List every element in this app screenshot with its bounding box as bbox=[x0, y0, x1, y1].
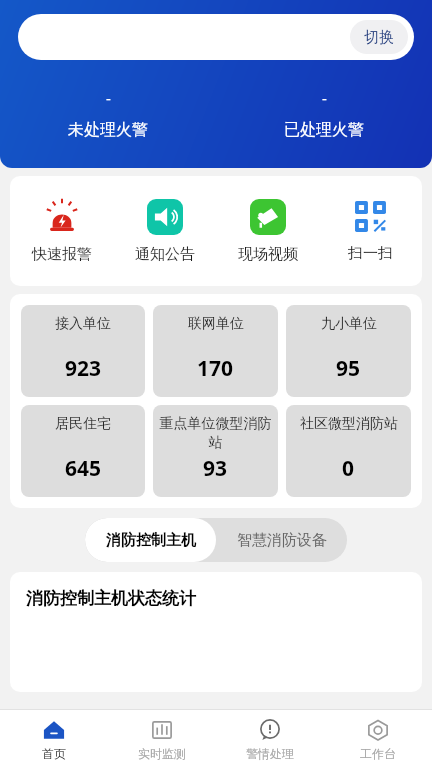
staticText: 社区微型消防站 bbox=[300, 415, 398, 433]
staticText: 170 bbox=[197, 354, 234, 383]
button[interactable]: 切换 bbox=[18, 14, 414, 60]
button[interactable]: 首页 bbox=[0, 718, 108, 761]
button[interactable]: 重点单位微型消防站 bbox=[153, 405, 278, 497]
staticText: 扫一扫 bbox=[348, 244, 393, 263]
button[interactable]: 接入单位 bbox=[21, 305, 145, 397]
button[interactable]: - bbox=[216, 88, 432, 140]
button[interactable]: 居民住宅 bbox=[21, 405, 145, 497]
button[interactable]: 通知公告 bbox=[113, 199, 216, 264]
staticText: 93 bbox=[203, 454, 228, 483]
button[interactable]: 九小单位 bbox=[286, 305, 411, 397]
button[interactable]: - bbox=[0, 88, 216, 140]
staticText: 九小单位 bbox=[321, 315, 377, 333]
staticText: 消防控制主机状态统计 bbox=[26, 588, 196, 609]
button[interactable]: 联网单位 bbox=[153, 305, 278, 397]
staticText: 未处理火警 bbox=[68, 120, 148, 140]
button[interactable]: 快速报警 bbox=[10, 199, 113, 264]
staticText: 工作台 bbox=[360, 746, 396, 761]
staticText: 通知公告 bbox=[135, 245, 195, 264]
button[interactable]: 工作台 bbox=[324, 718, 432, 761]
staticText: 接入单位 bbox=[55, 315, 111, 333]
button[interactable]: 实时监测 bbox=[108, 718, 216, 761]
staticText: 快速报警 bbox=[32, 245, 92, 264]
button[interactable]: 智慧消防设备 bbox=[216, 518, 347, 562]
button[interactable]: 警情处理 bbox=[216, 718, 324, 761]
staticText: 切换 bbox=[364, 28, 394, 47]
button[interactable]: 消防控制主机 bbox=[85, 518, 216, 562]
button[interactable]: 切换 bbox=[350, 20, 408, 54]
staticText: 645 bbox=[65, 454, 102, 483]
staticText: - bbox=[106, 88, 111, 108]
staticText: 现场视频 bbox=[238, 245, 298, 264]
staticText: 0 bbox=[342, 454, 355, 483]
staticText: 已处理火警 bbox=[284, 120, 364, 140]
staticText: 95 bbox=[336, 354, 361, 383]
staticText: - bbox=[322, 88, 327, 108]
button[interactable]: 社区微型消防站 bbox=[286, 405, 411, 497]
staticText: 消防控制主机 bbox=[106, 531, 196, 550]
staticText: 警情处理 bbox=[246, 746, 294, 761]
button[interactable]: 现场视频 bbox=[216, 199, 319, 264]
staticText: 居民住宅 bbox=[55, 415, 111, 433]
staticText: 智慧消防设备 bbox=[237, 531, 327, 550]
staticText: 联网单位 bbox=[188, 315, 244, 333]
staticText: 923 bbox=[65, 354, 102, 383]
staticText: 首页 bbox=[42, 746, 66, 761]
button[interactable]: 扫一扫 bbox=[319, 200, 422, 263]
staticText: 实时监测 bbox=[138, 746, 186, 761]
staticText: 重点单位微型消防站 bbox=[157, 415, 274, 451]
